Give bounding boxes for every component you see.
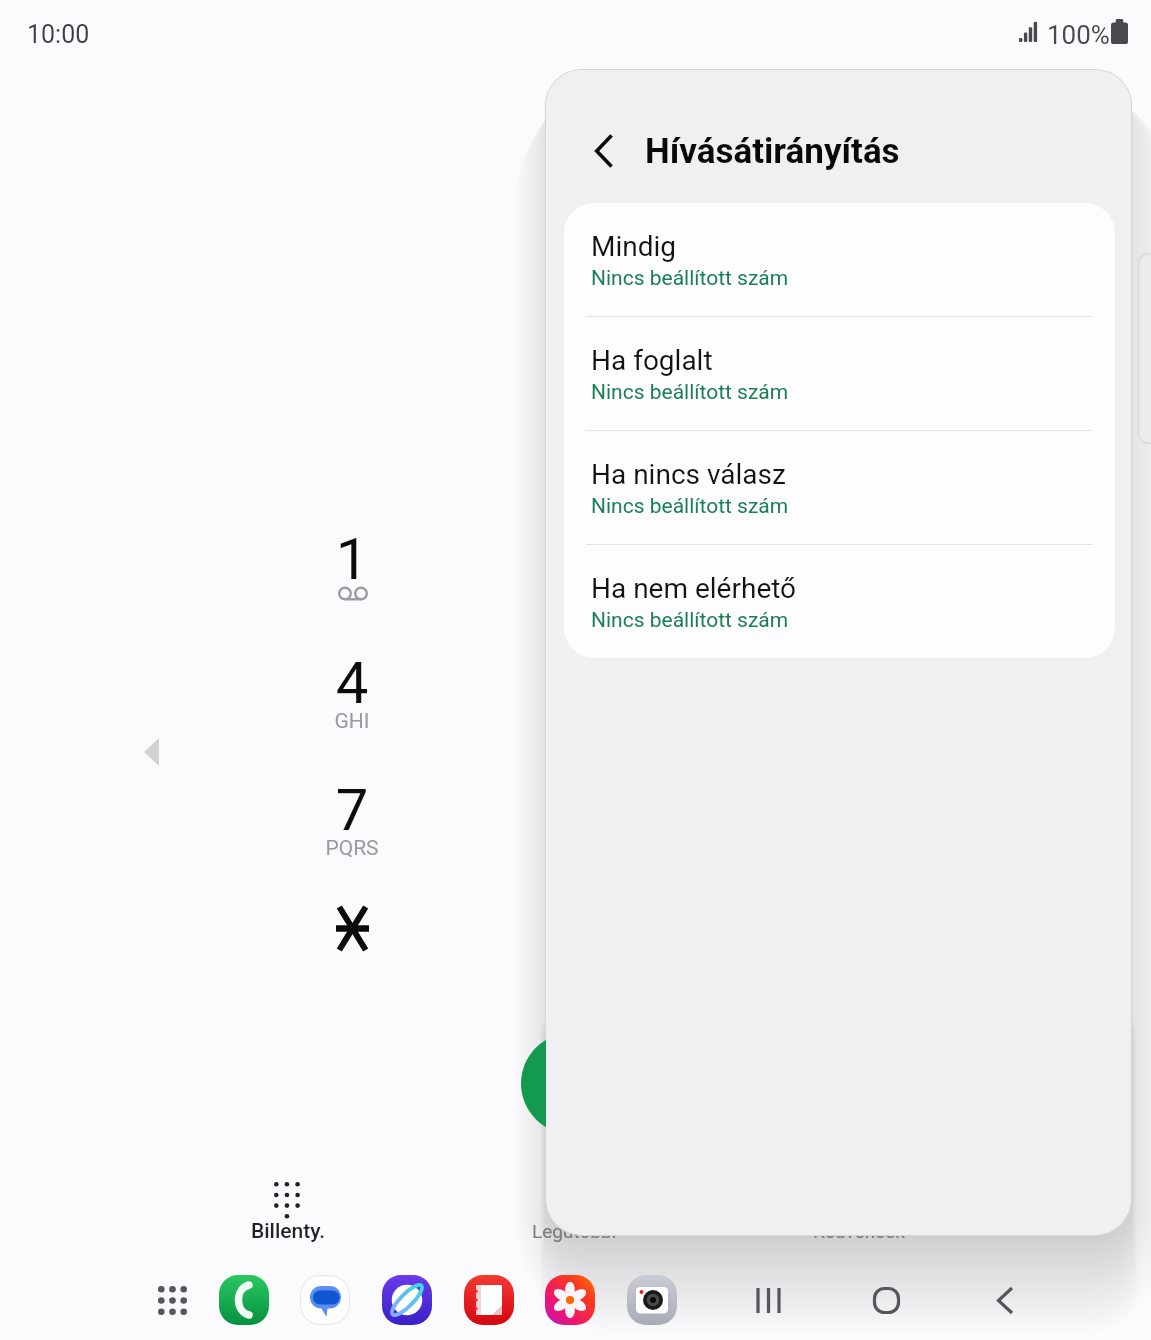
button[interactable]: Apps	[147, 1275, 197, 1325]
button[interactable]: Call	[521, 1033, 622, 1134]
staticText: 10:00	[27, 20, 90, 49]
staticText: Hívásátirányítás	[645, 131, 900, 172]
staticText: 100%	[1047, 20, 1110, 50]
staticText: Nincs beállított szám	[591, 494, 789, 519]
button[interactable]: Mindig	[564, 203, 1115, 317]
button[interactable]: Back	[575, 123, 631, 179]
button[interactable]: Notes	[464, 1275, 514, 1325]
staticText: Mindig	[591, 230, 677, 263]
staticText: GHI	[300, 709, 404, 734]
staticText: 4	[300, 649, 404, 717]
staticText: 1	[300, 525, 404, 593]
button[interactable]: Gallery	[545, 1275, 595, 1325]
staticText: Nincs beállított szám	[591, 380, 789, 405]
button[interactable]: Back	[978, 1273, 1032, 1327]
button[interactable]: Camera	[627, 1275, 677, 1325]
button[interactable]: Internet	[382, 1275, 432, 1325]
button[interactable]: Messages	[300, 1275, 350, 1325]
button[interactable]	[300, 632, 404, 757]
button[interactable]	[300, 505, 404, 630]
staticText: Ha nem elérhető	[591, 572, 797, 605]
staticText: Nincs beállított szám	[591, 266, 789, 291]
button[interactable]	[300, 759, 404, 884]
staticText: Billenty.	[240, 1219, 336, 1244]
button[interactable]: Ha nincs válasz	[564, 431, 1115, 545]
staticText: PQRS	[300, 836, 404, 861]
button[interactable]	[240, 1172, 336, 1246]
staticText: Kedvencek	[813, 1220, 905, 1242]
staticText: Ha nincs válasz	[591, 458, 786, 491]
button[interactable]: Phone	[219, 1275, 269, 1325]
button[interactable]: Home	[859, 1273, 913, 1327]
button[interactable]	[300, 886, 404, 976]
staticText: Nincs beállított szám	[591, 608, 789, 633]
staticText: Legutóbbi	[532, 1220, 617, 1242]
staticText: 7	[300, 776, 404, 844]
button[interactable]: Recents	[740, 1273, 794, 1327]
button[interactable]: Ha nem elérhető	[564, 545, 1115, 658]
staticText: Ha foglalt	[591, 344, 713, 377]
button[interactable]: Ha foglalt	[564, 317, 1115, 431]
